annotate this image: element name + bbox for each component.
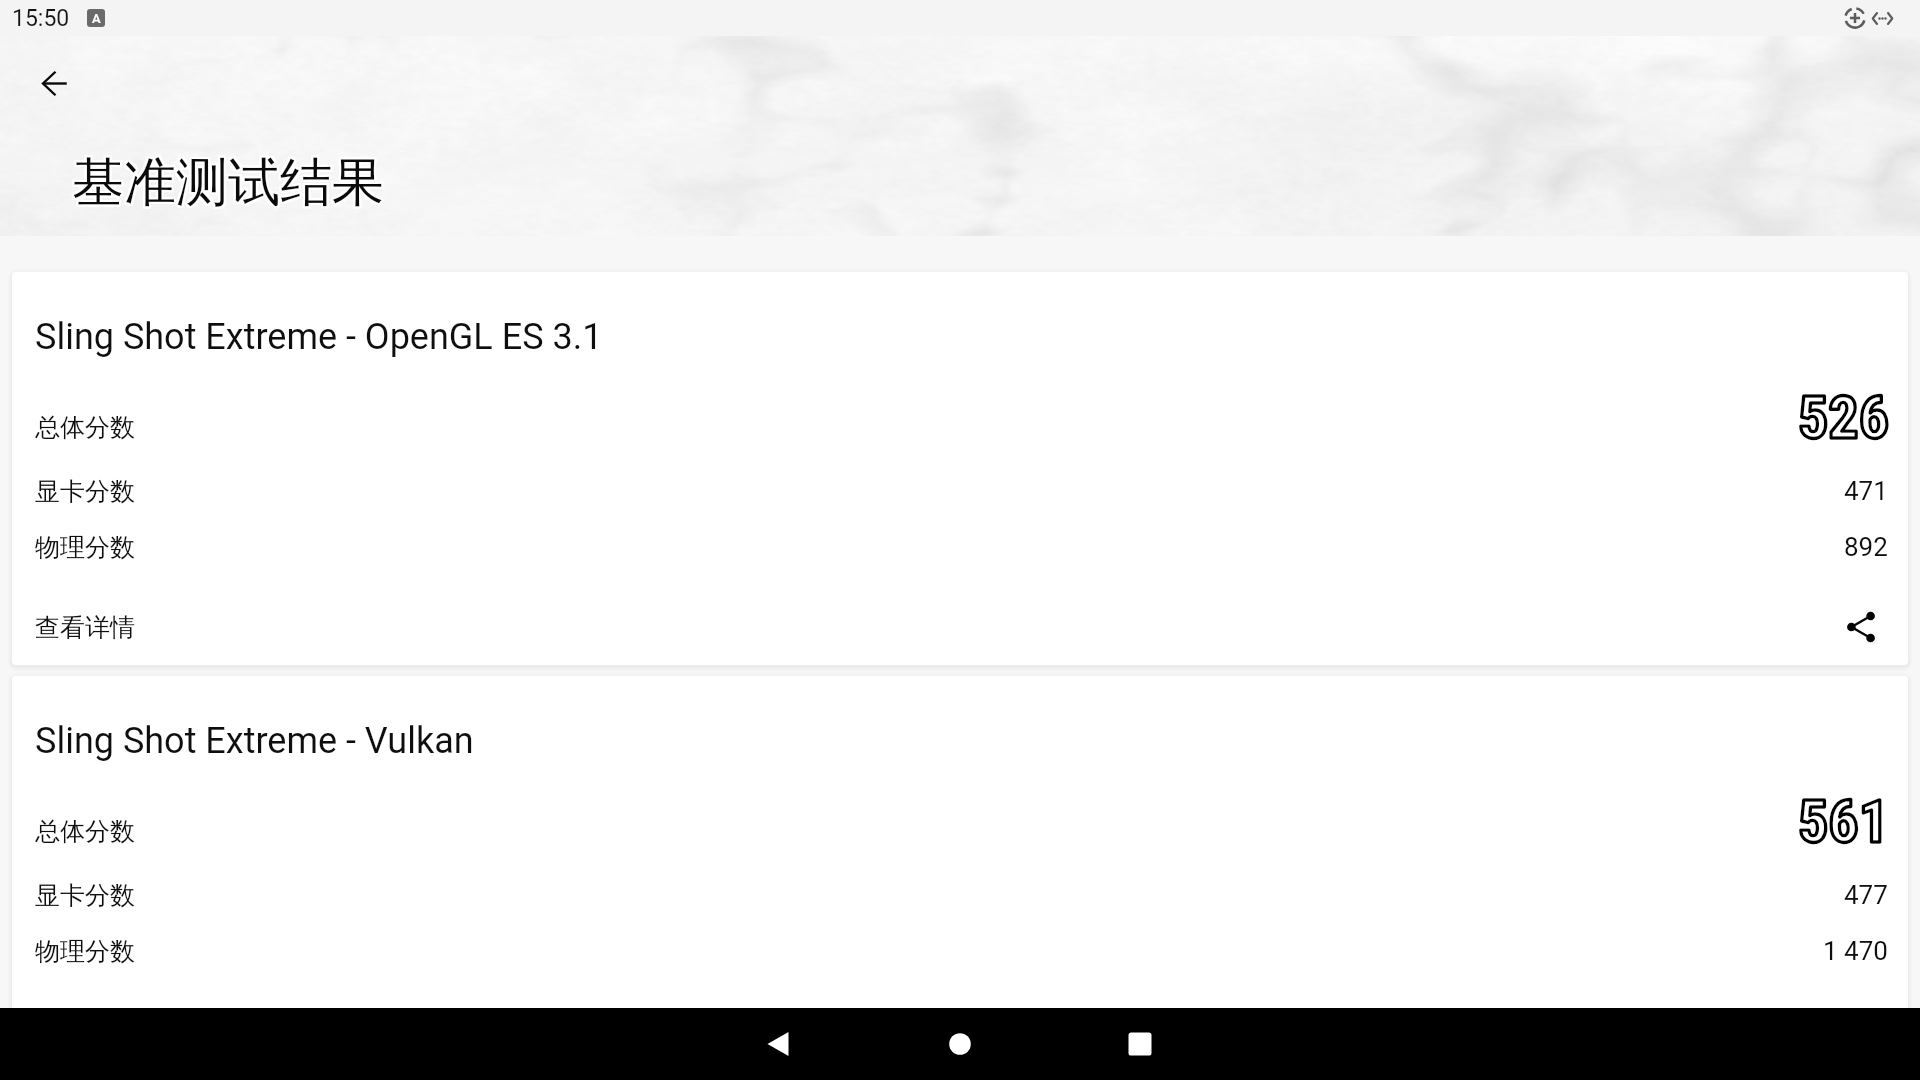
button[interactable]: Back <box>688 1008 868 1080</box>
button[interactable] <box>12 676 1908 1069</box>
staticText: 基准测试结果 <box>74 149 386 215</box>
staticText: 477 <box>1844 880 1888 910</box>
staticText: 显卡分数 <box>35 880 135 911</box>
staticText: 基准测试结果 <box>72 148 384 214</box>
staticText: 基准测试结果 <box>72 150 384 216</box>
button[interactable]: Back <box>28 57 80 109</box>
staticText: 526 <box>1798 382 1890 452</box>
staticText: 基准测试结果 <box>71 148 383 214</box>
button[interactable]: Home <box>870 1008 1050 1080</box>
staticText: 基准测试结果 <box>70 148 382 214</box>
staticText: 基准测试结果 <box>72 152 384 218</box>
staticText: 基准测试结果 <box>71 152 383 218</box>
staticText: 892 <box>1844 532 1888 562</box>
button[interactable]: Recent apps <box>1050 1008 1230 1080</box>
staticText: 基准测试结果 <box>72 151 384 217</box>
staticText: 基准测试结果 <box>71 149 383 215</box>
staticText: 基准测试结果 <box>70 151 382 217</box>
staticText: 基准测试结果 <box>74 150 386 216</box>
staticText: 总体分数 <box>35 816 135 847</box>
staticText: 基准测试结果 <box>70 149 382 215</box>
button[interactable]: 查看详情 <box>25 603 145 651</box>
button[interactable] <box>12 272 1908 665</box>
staticText: 基准测试结果 <box>73 152 385 218</box>
staticText: 基准测试结果 <box>73 148 385 214</box>
button[interactable]: 查看详情 <box>25 1007 145 1055</box>
button[interactable]: Share <box>1835 1005 1887 1057</box>
staticText: A <box>92 11 101 26</box>
staticText: 基准测试结果 <box>73 151 385 217</box>
staticText: 查看详情 <box>35 612 135 643</box>
button[interactable]: Share <box>1835 601 1887 653</box>
staticText: 物理分数 <box>35 936 135 967</box>
staticText: 基准测试结果 <box>74 152 386 218</box>
staticText: 561 <box>1798 786 1890 856</box>
staticText: 基准测试结果 <box>74 148 386 214</box>
staticText: 基准测试结果 <box>70 152 382 218</box>
staticText: 471 <box>1844 476 1888 506</box>
staticText: Sling Shot Extreme - Vulkan <box>35 720 474 762</box>
staticText: 15:50 <box>12 5 70 32</box>
staticText: 基准测试结果 <box>73 150 385 216</box>
staticText: 基准测试结果 <box>71 151 383 217</box>
staticText: 基准测试结果 <box>71 150 383 216</box>
staticText: 基准测试结果 <box>70 150 382 216</box>
staticText: 总体分数 <box>35 412 135 443</box>
staticText: 基准测试结果 <box>72 149 384 215</box>
staticText: 基准测试结果 <box>74 151 386 217</box>
staticText: Sling Shot Extreme - OpenGL ES 3.1 <box>35 316 603 358</box>
staticText: 基准测试结果 <box>73 149 385 215</box>
staticText: 显卡分数 <box>35 476 135 507</box>
staticText: 物理分数 <box>35 532 135 563</box>
staticText: 1 470 <box>1823 936 1888 966</box>
